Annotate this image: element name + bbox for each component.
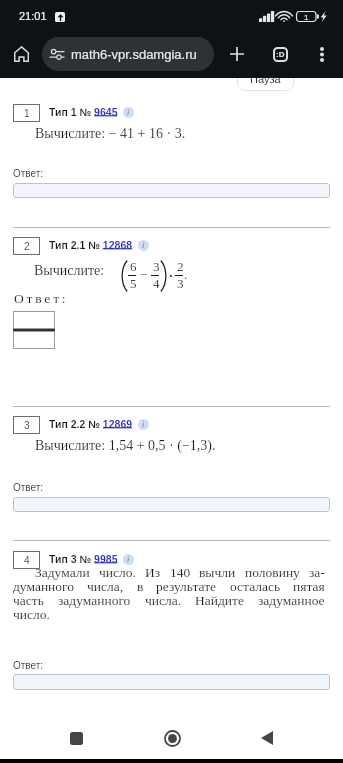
button[interactable]: New tab (223, 40, 251, 68)
staticText: думанного (13, 579, 75, 594)
staticText: число. (99, 565, 136, 580)
staticText: половину (245, 565, 300, 580)
button[interactable]: Home (152, 718, 192, 758)
staticText: вычли (199, 565, 236, 580)
staticText: числа, (87, 579, 124, 594)
button[interactable]: Info (138, 240, 149, 251)
staticText: Тип 2.2 № 12869 (49, 418, 133, 430)
staticText: Тип 3 № 9985 (49, 553, 118, 565)
staticText: пятая (293, 579, 325, 594)
button[interactable]: Info (123, 554, 134, 565)
staticText: Ответ: (13, 482, 44, 493)
staticText: задуманное (258, 593, 325, 608)
staticText: i (142, 420, 145, 429)
staticText: 140 (170, 565, 191, 580)
button[interactable]: Info (138, 419, 149, 430)
button[interactable] (13, 674, 330, 690)
staticText: числа. (145, 593, 182, 608)
staticText: Тип 2.1 № 12868 (49, 239, 133, 251)
staticText: 5 (130, 276, 137, 290)
staticText: :D (276, 50, 285, 59)
staticText: Найдите (195, 593, 244, 608)
staticText: i (127, 108, 130, 117)
staticText: i (127, 555, 130, 564)
staticText: Пауза (250, 73, 281, 85)
staticText: i (142, 241, 145, 250)
button[interactable]: Denominator (13, 331, 55, 349)
button[interactable]: Home (7, 40, 35, 68)
staticText: 3 (24, 420, 30, 431)
staticText: 4 (24, 555, 30, 566)
staticText: . (184, 267, 188, 282)
staticText: в (137, 579, 144, 594)
staticText: задуманного (58, 593, 131, 608)
button[interactable] (13, 497, 330, 512)
staticText: math6-vpr.sdamgia.ru (71, 47, 197, 62)
staticText: часть (13, 593, 44, 608)
staticText: Ответ: (14, 291, 69, 306)
staticText: 4 (153, 276, 160, 290)
button[interactable]: Recent apps (56, 718, 96, 758)
staticText: Задумали (35, 565, 90, 580)
staticText: осталась (230, 579, 281, 594)
button[interactable]: Back (247, 718, 287, 758)
staticText: 3 (177, 276, 184, 290)
button[interactable]: Info (123, 107, 134, 118)
staticText: за- (309, 565, 325, 580)
staticText: Вычислите: 1,54 + 0,5 · (−1,3). (35, 438, 216, 454)
staticText: Вычислите: − 41 + 16 · 3. (35, 126, 186, 142)
button[interactable]: Пауза (237, 67, 294, 91)
button[interactable]: Switch tabs (266, 40, 294, 68)
staticText: Из (145, 565, 161, 580)
button[interactable]: math6-vpr.sdamgia.ru (42, 37, 214, 71)
staticText: 3 (153, 259, 160, 273)
staticText: Тип 1 № 9645 (49, 106, 118, 118)
staticText: результате (156, 579, 217, 594)
staticText: число. (13, 607, 50, 622)
staticText: 6 (130, 259, 137, 273)
staticText: 1 (24, 108, 30, 119)
button[interactable] (13, 183, 330, 198)
staticText: 2 (177, 259, 184, 273)
button[interactable]: Numerator (13, 311, 55, 329)
staticText: Ответ: (13, 660, 44, 671)
button[interactable]: More options (308, 40, 336, 68)
staticText: 2 (24, 241, 30, 252)
staticText: Ответ: (13, 168, 44, 179)
staticText: Вычислите: (34, 263, 105, 279)
staticText: 1 (304, 13, 309, 22)
staticText: 21:01 (19, 10, 47, 22)
staticText: − (140, 267, 148, 282)
